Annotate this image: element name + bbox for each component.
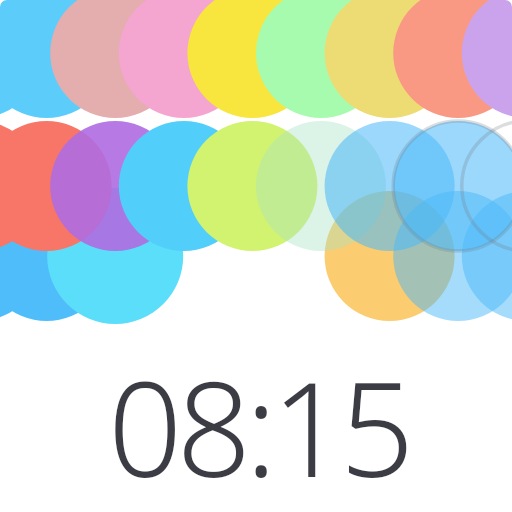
staticText: 08:15 — [108, 338, 409, 512]
button[interactable]: Clock watch face — [0, 0, 512, 512]
